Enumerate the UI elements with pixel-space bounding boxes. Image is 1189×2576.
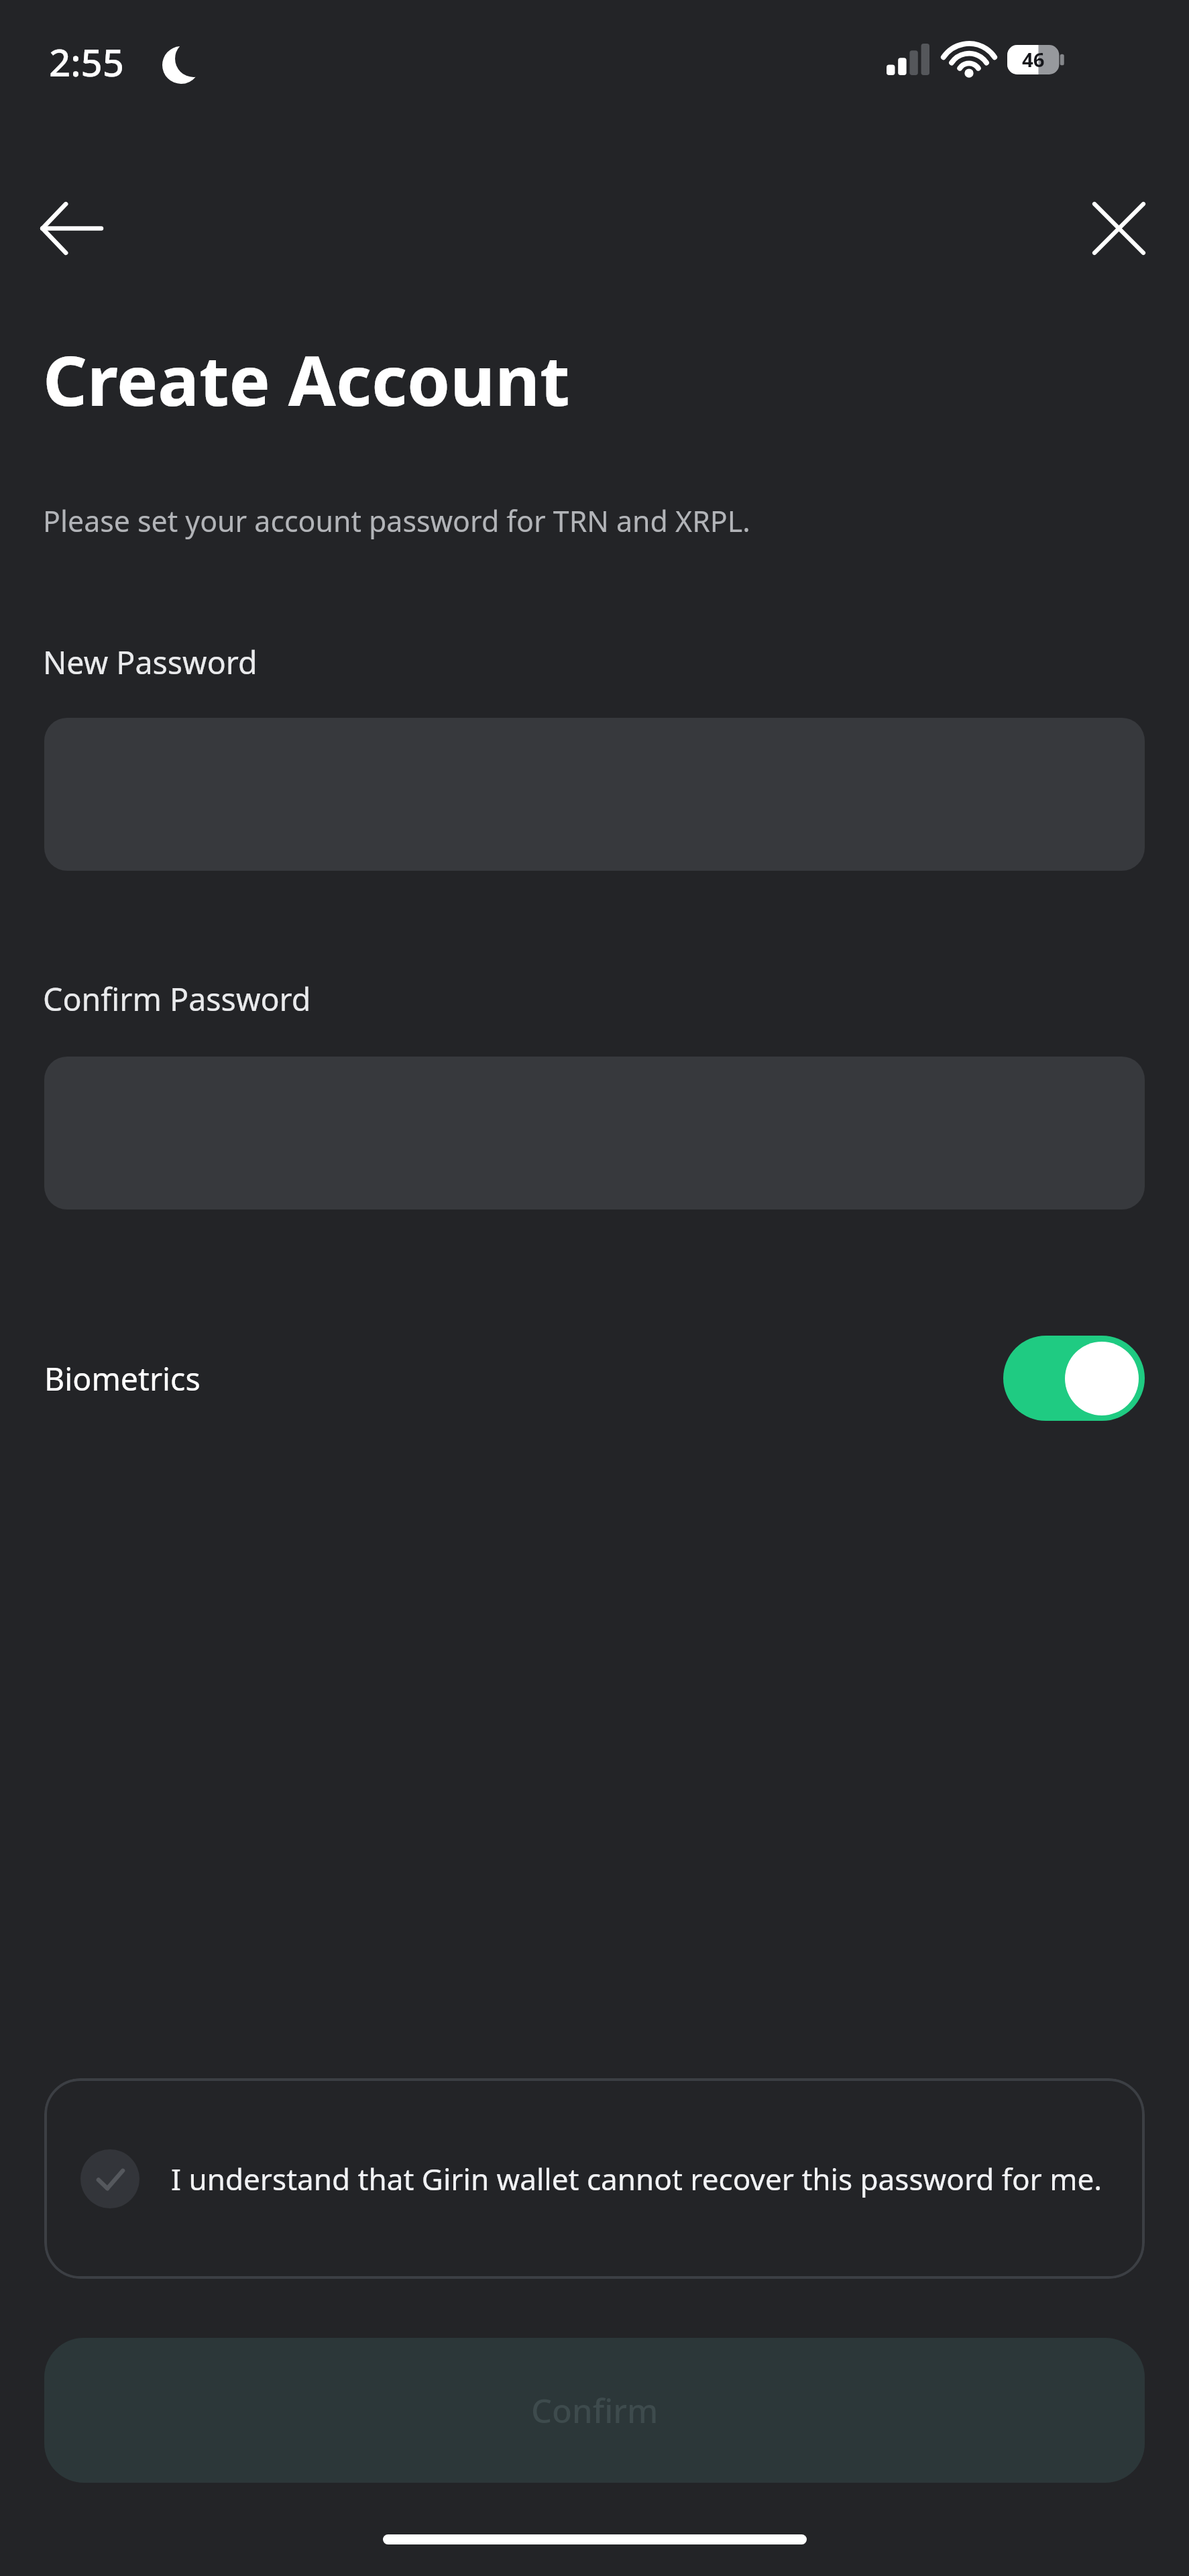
button[interactable]: I understand that Girin wallet cannot re… xyxy=(44,2078,1145,2279)
button[interactable]: Close xyxy=(1071,180,1166,276)
staticText: Confirm xyxy=(531,2388,659,2433)
staticText: 46 xyxy=(1022,46,1045,73)
staticText: Please set your account password for TRN… xyxy=(43,501,750,540)
staticText: Biometrics xyxy=(44,1357,201,1399)
staticText: 2:55 xyxy=(49,36,124,88)
staticText: Create Account xyxy=(43,332,570,426)
button[interactable]: Back xyxy=(23,180,118,276)
staticText: New Password xyxy=(43,641,258,683)
staticText: I understand that Girin wallet cannot re… xyxy=(171,2159,1102,2199)
button[interactable]: Biometrics xyxy=(0,1318,1189,1439)
staticText: Confirm Password xyxy=(43,977,311,1020)
